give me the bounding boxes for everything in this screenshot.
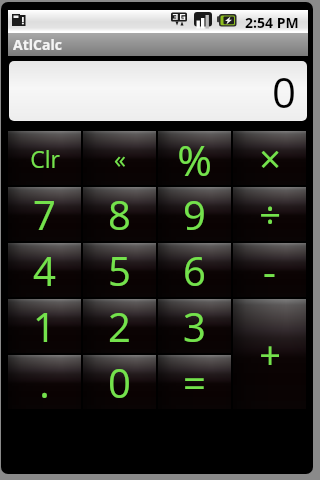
button[interactable]: 5 bbox=[83, 243, 156, 297]
staticText: + bbox=[259, 328, 281, 380]
button[interactable]: 3 bbox=[158, 299, 231, 353]
button[interactable]: 0 bbox=[9, 61, 307, 121]
button[interactable]: 4 bbox=[8, 243, 81, 297]
staticText: 1 bbox=[33, 299, 56, 353]
button[interactable]: Plus bbox=[233, 299, 306, 409]
staticText: . bbox=[39, 355, 50, 409]
button[interactable]: 7 bbox=[8, 187, 81, 241]
staticText: 5 bbox=[108, 243, 131, 297]
button[interactable]: Clr bbox=[8, 131, 81, 185]
button[interactable]: 6 bbox=[158, 243, 231, 297]
staticText: % bbox=[177, 131, 212, 185]
button[interactable]: 9 bbox=[158, 187, 231, 241]
button[interactable]: Minus bbox=[233, 243, 306, 297]
staticText: 3 bbox=[183, 299, 206, 353]
button[interactable]: Equals bbox=[158, 355, 231, 409]
staticText: 7 bbox=[33, 187, 56, 241]
button[interactable]: Decimal point bbox=[8, 355, 81, 409]
button[interactable]: Multiply bbox=[233, 131, 306, 185]
staticText: 0 bbox=[108, 355, 131, 409]
button[interactable]: 1 bbox=[8, 299, 81, 353]
button[interactable]: Divide bbox=[233, 187, 306, 241]
staticText: 6 bbox=[183, 243, 206, 297]
button[interactable]: Backspace bbox=[83, 131, 156, 185]
staticText: « bbox=[114, 142, 126, 175]
button[interactable]: Percent bbox=[158, 131, 231, 185]
staticText: ÷ bbox=[259, 188, 281, 240]
staticText: 9 bbox=[183, 187, 206, 241]
staticText: - bbox=[263, 243, 276, 297]
staticText: 2:54 PM bbox=[245, 13, 299, 32]
staticText: 2 bbox=[108, 299, 131, 353]
button[interactable]: 8 bbox=[83, 187, 156, 241]
staticText: AtlCalc bbox=[13, 35, 62, 54]
button[interactable]: 2 bbox=[83, 299, 156, 353]
staticText: = bbox=[183, 355, 206, 409]
staticText: 8 bbox=[108, 187, 131, 241]
staticText: 0 bbox=[272, 63, 297, 120]
staticText: Clr bbox=[30, 143, 60, 174]
button[interactable]: 0 bbox=[83, 355, 156, 409]
staticText: × bbox=[259, 132, 281, 184]
staticText: 4 bbox=[33, 243, 56, 297]
